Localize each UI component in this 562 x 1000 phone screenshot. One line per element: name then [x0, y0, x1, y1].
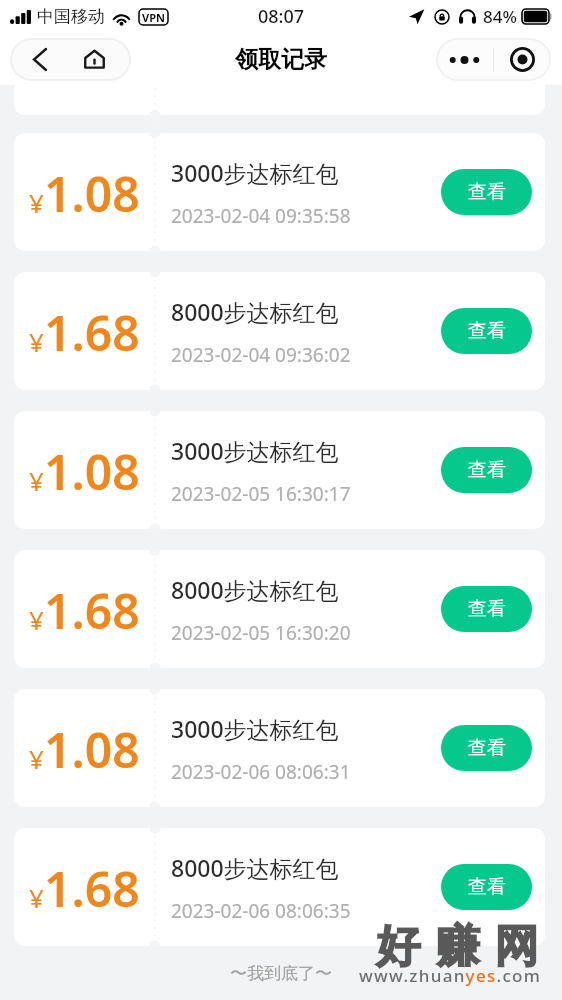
- button[interactable]: More options: [436, 38, 493, 81]
- button[interactable]: ¥: [14, 550, 545, 668]
- staticText: 查看: [468, 875, 506, 899]
- button[interactable]: Back: [14, 38, 64, 81]
- staticText: 2023-02-06 08:06:31: [171, 759, 351, 785]
- staticText: 3000步达标红包: [171, 157, 339, 188]
- staticText: 好赚网: [369, 919, 546, 969]
- button[interactable]: 查看: [441, 864, 532, 910]
- staticText: 8000步达标红包: [171, 574, 339, 605]
- button[interactable]: ¥: [14, 828, 545, 946]
- staticText: 2023-02-05 16:30:20: [171, 620, 351, 646]
- staticText: 1.68: [44, 856, 140, 921]
- button[interactable]: Home: [69, 38, 119, 81]
- staticText: 8000步达标红包: [171, 296, 339, 327]
- button[interactable]: ¥: [14, 411, 545, 529]
- staticText: ¥: [29, 324, 44, 359]
- button[interactable]: 查看: [441, 725, 532, 771]
- staticText: 查看: [468, 736, 506, 760]
- staticText: 08:07: [258, 4, 305, 29]
- staticText: 1.08: [44, 439, 140, 504]
- staticText: 2023-02-05 16:30:17: [171, 481, 351, 507]
- staticText: 2023-02-04 09:36:02: [171, 342, 351, 368]
- button[interactable]: ¥: [14, 133, 545, 251]
- staticText: ¥: [29, 185, 44, 220]
- staticText: 查看: [468, 597, 506, 621]
- staticText: ¥: [29, 463, 44, 498]
- staticText: 84%: [483, 5, 517, 28]
- button[interactable]: 查看: [441, 586, 532, 632]
- button[interactable]: 查看: [441, 447, 532, 493]
- staticText: 1.68: [44, 300, 140, 365]
- staticText: VPN: [142, 10, 165, 25]
- staticText: ¥: [29, 602, 44, 637]
- staticText: 查看: [468, 319, 506, 343]
- staticText: 3000步达标红包: [171, 713, 339, 744]
- staticText: 中国移动: [37, 6, 105, 27]
- staticText: 查看: [468, 180, 506, 204]
- staticText: 2023-02-06 08:06:35: [171, 898, 351, 924]
- button[interactable]: ¥: [14, 272, 545, 390]
- button[interactable]: Close mini program: [494, 38, 551, 81]
- staticText: 8000步达标红包: [171, 852, 339, 883]
- staticText: 2023-02-04 09:35:58: [171, 203, 351, 229]
- staticText: 领取记录: [235, 45, 327, 74]
- staticText: 查看: [468, 458, 506, 482]
- staticText: 1.68: [44, 578, 140, 643]
- staticText: 1.08: [44, 161, 140, 226]
- staticText: 〜我到底了〜: [0, 963, 562, 984]
- button[interactable]: ¥: [14, 689, 545, 807]
- staticText: ¥: [29, 880, 44, 915]
- staticText: www.zhuanyes.com: [359, 964, 542, 987]
- button[interactable]: 查看: [441, 169, 532, 215]
- button[interactable]: 查看: [441, 308, 532, 354]
- staticText: 3000步达标红包: [171, 435, 339, 466]
- staticText: 1.08: [44, 717, 140, 782]
- staticText: ¥: [29, 741, 44, 776]
